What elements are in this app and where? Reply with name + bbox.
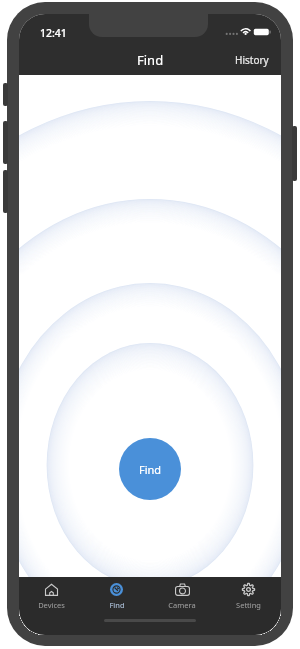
staticText: Camera bbox=[168, 600, 196, 610]
button[interactable]: Camera bbox=[149, 577, 215, 624]
staticText: Find bbox=[137, 51, 164, 69]
button[interactable]: Find bbox=[119, 438, 181, 500]
button[interactable]: Setting bbox=[215, 577, 281, 624]
button[interactable]: Find bbox=[84, 577, 149, 624]
button[interactable]: History bbox=[223, 47, 281, 73]
button[interactable]: Devices bbox=[19, 577, 84, 624]
staticText: Find bbox=[109, 600, 125, 610]
staticText: 12:41 bbox=[40, 26, 67, 40]
staticText: History bbox=[235, 53, 269, 67]
staticText: Setting bbox=[236, 600, 261, 610]
staticText: Devices bbox=[38, 600, 65, 610]
staticText: Find bbox=[139, 462, 162, 477]
